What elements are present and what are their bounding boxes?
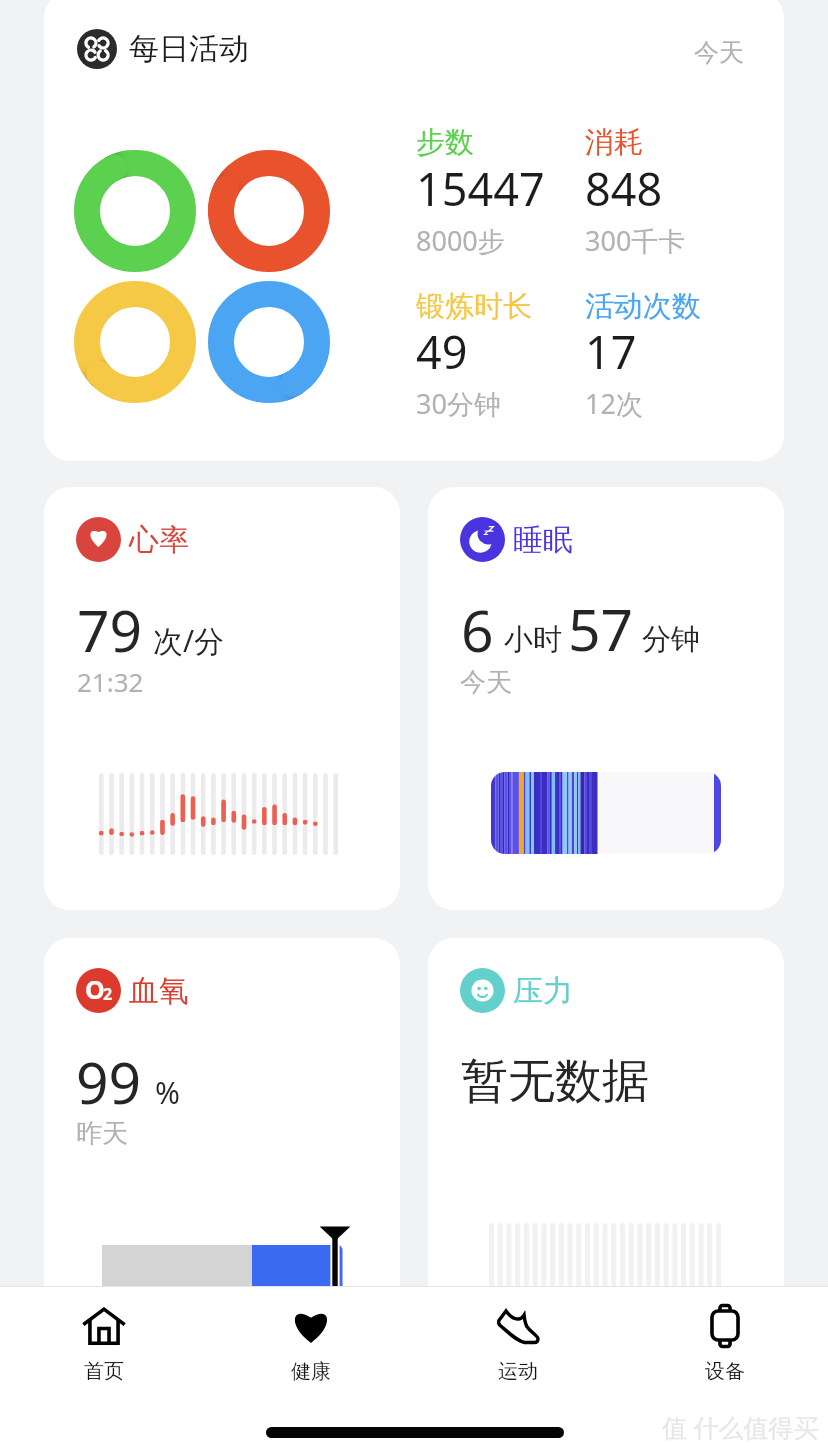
staticText: 睡眠 [513,521,573,559]
button[interactable]: 压力 [428,938,784,1361]
staticText: 值 什么值得买 [662,1410,819,1444]
button[interactable]: Health [207,1286,414,1454]
staticText: 57 [568,590,634,668]
staticText: 步数 [416,124,474,161]
staticText: 锻炼时长 [416,288,532,325]
staticText: 心率 [129,521,189,559]
staticText: O [85,972,105,1006]
button[interactable]: 每日活动 [44,0,784,461]
button[interactable]: Device [621,1286,828,1454]
staticText: 99 [76,1043,142,1121]
staticText: 15447 [416,158,545,219]
other: Health [290,1307,332,1345]
staticText: 30分钟 [416,385,501,422]
staticText: 血氧 [129,972,189,1010]
staticText: 设备 [705,1359,745,1384]
other: Workout [497,1307,539,1345]
staticText: 8000步 [416,222,505,259]
staticText: 消耗 [585,124,643,161]
staticText: 压力 [513,972,573,1010]
button[interactable]: 血氧 [44,938,400,1361]
staticText: 昨天 [76,1117,128,1150]
staticText: 暂无数据 [461,1052,649,1111]
staticText: 首页 [84,1359,124,1384]
staticText: 活动次数 [585,288,701,325]
staticText: % [155,1072,180,1113]
staticText: 79 [77,591,143,669]
staticText: 今天 [460,666,512,699]
staticText: 49 [416,321,468,382]
staticText: 分钟 [642,621,700,658]
staticText: 小时 [504,621,562,658]
staticText: 健康 [291,1359,331,1384]
staticText: 21:32 [77,664,144,699]
staticText: 次/分 [153,620,225,661]
other: Home [83,1307,125,1345]
other: Device [704,1307,746,1345]
staticText: 17 [585,321,637,382]
staticText: 每日活动 [129,30,249,68]
staticText: 848 [585,158,663,219]
staticText: 6 [461,591,494,669]
staticText: 12次 [585,385,643,422]
staticText: 今天 [694,37,744,68]
staticText: 300千卡 [585,222,686,259]
staticText: 运动 [498,1359,538,1384]
button[interactable]: 心率 [44,487,400,910]
staticText: 2 [103,983,113,1005]
button[interactable]: Home [0,1286,207,1454]
button[interactable]: 睡眠 [428,487,784,910]
button[interactable]: Workout [414,1286,621,1454]
